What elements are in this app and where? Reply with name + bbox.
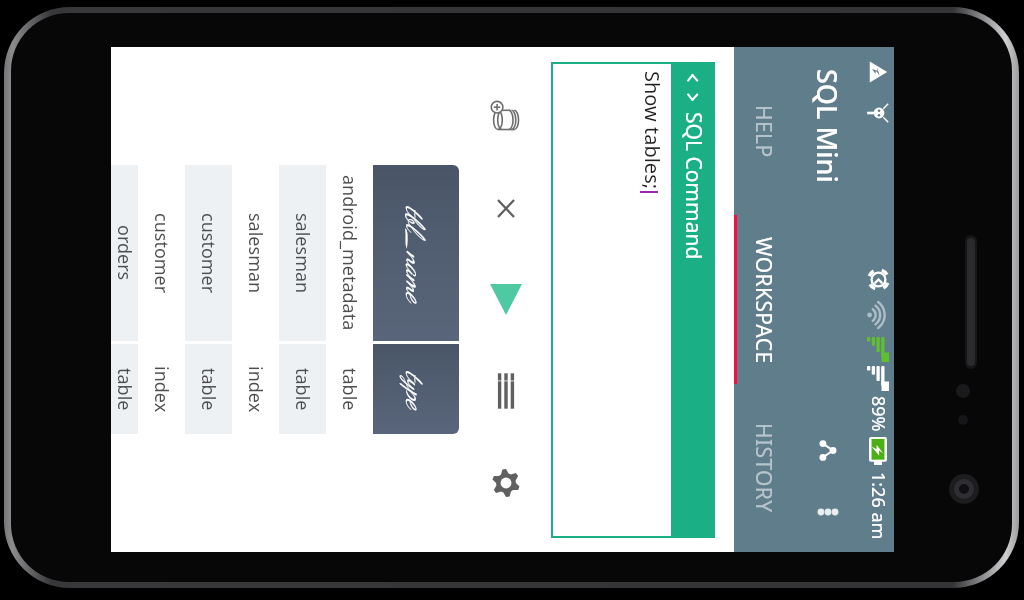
- staticText: salesman: [243, 213, 268, 294]
- staticText: table: [337, 368, 362, 411]
- staticText: tbl_name: [400, 206, 431, 301]
- button[interactable]: salesman: [279, 165, 326, 434]
- staticText: SQL Mini: [809, 69, 846, 183]
- staticText: android_metadata: [337, 175, 362, 331]
- button[interactable]: orders: [111, 165, 138, 434]
- staticText: index: [149, 366, 174, 413]
- staticText: SQL Command: [679, 112, 708, 260]
- staticText: salesman: [290, 213, 315, 294]
- staticText: HELP: [749, 105, 778, 158]
- staticText: table: [112, 368, 137, 411]
- staticText: orders: [112, 225, 137, 281]
- button[interactable]: android_metadata: [326, 165, 373, 434]
- button[interactable]: Add database: [483, 93, 529, 139]
- staticText: Show tables;: [639, 71, 666, 190]
- button[interactable]: Show tables list: [483, 368, 529, 414]
- staticText: table: [290, 368, 315, 411]
- button[interactable]: Run query: [483, 276, 529, 322]
- button[interactable]: SQL Command: [673, 62, 715, 538]
- button[interactable]: customer: [185, 165, 232, 434]
- button[interactable]: customer: [138, 165, 185, 434]
- button[interactable]: WORKSPACE: [734, 216, 793, 384]
- staticText: WORKSPACE: [749, 237, 778, 364]
- staticText: type: [400, 371, 431, 408]
- button[interactable]: Settings: [483, 460, 529, 506]
- staticText: index: [243, 366, 268, 413]
- staticText: customer: [149, 213, 174, 294]
- button[interactable]: HELP: [734, 47, 793, 216]
- button[interactable]: Clear query: [483, 185, 529, 231]
- staticText: customer: [196, 213, 221, 294]
- button[interactable]: salesman: [232, 165, 279, 434]
- staticText: table: [196, 368, 221, 411]
- staticText: HISTORY: [749, 423, 778, 513]
- staticText: 1:26 am: [866, 472, 891, 540]
- button[interactable]: HISTORY: [734, 384, 793, 552]
- staticText: 89%: [866, 396, 891, 432]
- button[interactable]: Show tables;: [551, 62, 673, 538]
- button[interactable]: Share: [804, 426, 852, 474]
- button[interactable]: More options: [807, 491, 849, 533]
